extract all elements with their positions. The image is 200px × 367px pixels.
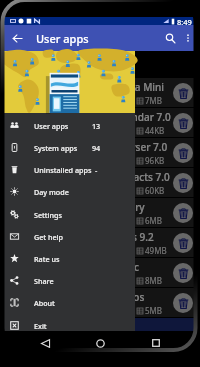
staticText: System apps — [34, 143, 78, 153]
button[interactable]: Opera Mini — [3, 78, 195, 108]
staticText: Share — [34, 276, 54, 286]
staticText: 94 — [92, 143, 101, 153]
staticText: Rate us — [34, 254, 60, 264]
staticText: Maps 9.2 — [111, 230, 154, 244]
staticText: Uninstalled apps — [34, 165, 92, 175]
button[interactable]: Uninstall — [173, 233, 193, 253]
button[interactable]: Get help — [3, 225, 135, 248]
button[interactable]: Uninstall — [173, 293, 193, 313]
staticText: Settings — [34, 210, 62, 220]
staticText: 5MB — [145, 305, 163, 316]
button[interactable]: System apps — [3, 136, 135, 159]
staticText: User apps — [34, 121, 69, 131]
button[interactable]: Recent apps — [145, 332, 167, 354]
button[interactable]: Gallery — [3, 198, 195, 228]
button[interactable]: Day mode — [3, 180, 135, 203]
button[interactable]: Uninstall — [173, 263, 193, 283]
staticText: Exit — [34, 321, 47, 331]
staticText: Day mode — [34, 187, 69, 197]
button[interactable]: Rate us — [3, 247, 135, 270]
button[interactable]: About — [3, 291, 135, 314]
staticText: Get help — [34, 232, 64, 242]
staticText: 6MB — [145, 215, 163, 226]
staticText: Gallery — [111, 200, 145, 214]
button[interactable]: Uninstalled apps — [3, 158, 135, 181]
button[interactable]: Uninstall — [173, 143, 193, 163]
staticText: Browser 7.0 — [111, 140, 168, 154]
button[interactable]: Music — [3, 258, 195, 288]
button[interactable]: Back — [5, 26, 29, 50]
button[interactable]: Calendar 7.0 — [3, 108, 195, 138]
button[interactable]: Browser 7.0 — [3, 138, 195, 168]
staticText: User apps — [36, 31, 89, 46]
button[interactable]: User apps — [3, 114, 135, 137]
button[interactable]: Share — [3, 269, 135, 292]
staticText: Music — [111, 260, 139, 274]
button[interactable]: Uninstall — [173, 203, 193, 223]
staticText: 13 — [92, 121, 101, 131]
staticText: Opera Mini — [111, 80, 164, 94]
button[interactable]: Photos — [3, 288, 195, 318]
button[interactable]: Maps 9.2 — [3, 228, 195, 258]
button[interactable]: Settings — [3, 203, 135, 226]
staticText: 96KB — [145, 155, 165, 166]
button[interactable]: More options — [181, 25, 195, 51]
staticText: 8MB — [145, 275, 163, 286]
staticText: About — [34, 298, 55, 308]
staticText: Photos — [111, 290, 145, 304]
button[interactable]: Back — [34, 332, 56, 354]
staticText: 7MB — [145, 95, 163, 106]
staticText: Contacts 7.0 — [111, 170, 170, 184]
button[interactable]: Contacts 7.0 — [3, 168, 195, 198]
staticText: 60KB — [145, 185, 165, 196]
staticText: - — [95, 165, 98, 175]
staticText: 44KB — [145, 125, 165, 136]
button[interactable]: Uninstall — [173, 173, 193, 193]
button[interactable]: Exit — [3, 314, 135, 337]
button[interactable]: Uninstall — [173, 83, 193, 103]
button[interactable]: Home — [89, 332, 111, 354]
staticText: Calendar 7.0 — [111, 110, 171, 124]
staticText: 8:49 — [177, 17, 192, 25]
button[interactable]: Uninstall — [173, 113, 193, 133]
button[interactable]: Search — [158, 26, 182, 50]
staticText: 49MB — [145, 245, 167, 256]
